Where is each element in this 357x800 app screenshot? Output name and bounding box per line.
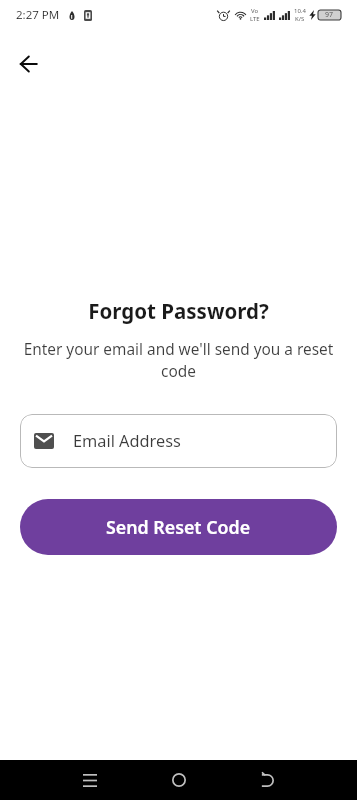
staticText: 10.4 <box>294 7 306 15</box>
button[interactable]: Email Address <box>20 414 337 468</box>
staticText: 97 <box>325 10 334 20</box>
staticText: K/S <box>295 15 305 23</box>
button[interactable]: Recent apps <box>45 760 134 800</box>
staticText: Enter your email and we'll send you a re… <box>21 339 336 382</box>
button[interactable]: Home <box>134 760 223 800</box>
staticText: Send Reset Code <box>106 515 251 539</box>
staticText: Forgot Password? <box>0 297 357 325</box>
staticText: Vo <box>251 7 259 15</box>
button[interactable]: Send Reset Code <box>20 499 337 555</box>
staticText: 2:27 PM <box>16 7 60 23</box>
staticText: Email Address <box>73 430 181 452</box>
button[interactable]: Back <box>6 42 50 86</box>
staticText: LTE <box>250 15 260 23</box>
button[interactable]: Back <box>223 760 312 800</box>
